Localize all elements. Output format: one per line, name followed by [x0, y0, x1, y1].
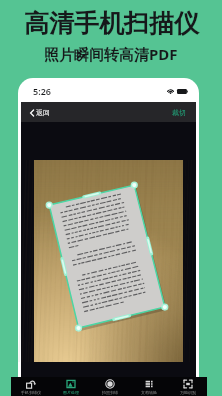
other: 图片处理 [66, 379, 76, 389]
other: 拍照扫描 [105, 379, 115, 389]
staticText: 图片处理 [63, 390, 79, 395]
staticText: 5:26 [33, 85, 51, 97]
staticText: 文档转换 [141, 390, 157, 395]
staticText: 拍照扫描 [102, 390, 118, 395]
button[interactable]: 图片处理 [51, 377, 90, 396]
staticText: 照片瞬间转高清PDF [44, 44, 178, 64]
button[interactable]: 万能识别 [168, 377, 207, 396]
staticText: 裁切 [172, 108, 186, 117]
button[interactable]: 裁切 [162, 105, 196, 120]
button[interactable]: 文档转换 [129, 377, 168, 396]
button[interactable]: 拍照扫描 [90, 377, 129, 396]
button[interactable]: 返回 [21, 105, 56, 120]
other: 手机扫描仪 [26, 379, 36, 389]
button[interactable]: 手机扫描仪 [11, 377, 51, 396]
staticText: 手机扫描仪 [21, 390, 41, 395]
staticText: 万能识别 [180, 390, 196, 395]
staticText: 返回 [36, 108, 50, 117]
staticText: 高清手机扫描仪 [24, 8, 199, 39]
other: 万能识别 [183, 379, 193, 389]
other: 文档转换 [144, 379, 154, 389]
